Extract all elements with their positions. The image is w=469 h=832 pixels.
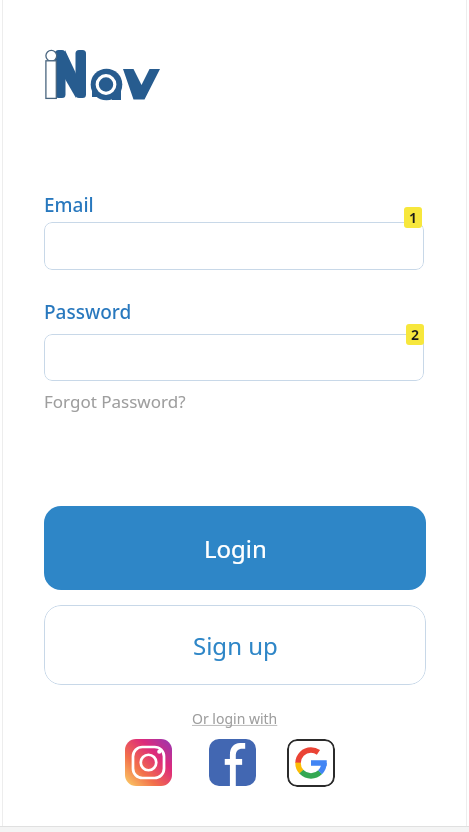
button[interactable] [44,222,424,270]
staticText: 2 [411,325,420,344]
button[interactable] [44,334,424,381]
staticText: Password [44,299,132,325]
staticText: Login [204,532,267,565]
button[interactable] [209,739,256,786]
button[interactable]: Sign up [44,605,426,685]
staticText: 1 [409,208,418,227]
button[interactable] [125,739,172,786]
button[interactable]: Forgot Password? [44,390,186,413]
staticText: Sign up [193,629,278,662]
button[interactable]: Or login with [192,709,278,728]
staticText: Email [44,192,94,218]
button[interactable]: Login [44,506,426,590]
button[interactable] [287,739,335,787]
